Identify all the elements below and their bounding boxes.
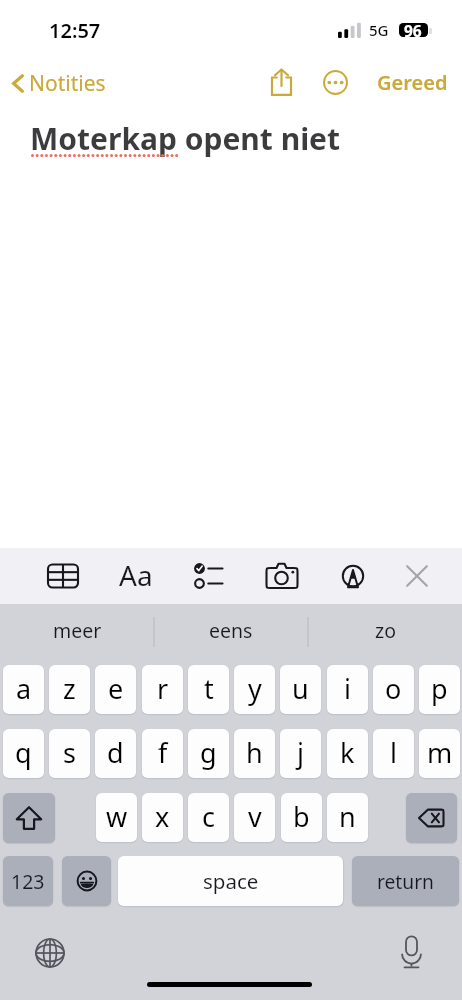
button[interactable]: Checklist [190, 556, 232, 596]
staticText: z [63, 670, 76, 707]
button[interactable]: c [188, 793, 229, 842]
button[interactable]: a [3, 665, 44, 714]
button[interactable]: Meer [316, 60, 354, 105]
button[interactable]: Camera [261, 556, 303, 596]
button[interactable]: q [3, 729, 44, 778]
button[interactable]: b [281, 793, 322, 842]
button[interactable]: k [327, 729, 368, 778]
button[interactable]: z [49, 665, 90, 714]
staticText: q [15, 734, 32, 771]
button[interactable]: t [188, 665, 229, 714]
staticText: zo [375, 617, 396, 644]
staticText: y [248, 670, 262, 707]
button[interactable]: f [142, 729, 183, 778]
staticText: 123 [11, 868, 45, 895]
button[interactable]: n [327, 793, 368, 842]
staticText: w [106, 798, 128, 835]
button[interactable]: y [234, 665, 275, 714]
button[interactable]: h [234, 729, 275, 778]
staticText: h [246, 734, 263, 771]
button[interactable]: Aa [114, 554, 158, 598]
button[interactable]: s [49, 729, 90, 778]
button[interactable]: Markeringen [332, 556, 374, 596]
button[interactable]: u [280, 665, 321, 714]
staticText: v [248, 798, 262, 835]
button[interactable]: d [95, 729, 136, 778]
button[interactable]: Shift [3, 793, 55, 843]
staticText: n [339, 798, 356, 835]
button[interactable]: p [419, 665, 460, 714]
staticText: e [108, 670, 124, 707]
button[interactable]: i [327, 665, 368, 714]
button[interactable]: Notities [12, 61, 106, 106]
button[interactable]: Delen [262, 59, 300, 104]
staticText: b [293, 798, 310, 835]
staticText: o [385, 670, 402, 707]
staticText: Aa [119, 556, 153, 594]
button[interactable]: o [373, 665, 414, 714]
staticText: 12:57 [49, 17, 101, 44]
staticText: 5G [369, 20, 389, 40]
button[interactable]: m [419, 729, 460, 778]
button[interactable]: Emoji [62, 856, 111, 906]
button[interactable]: meer [0, 604, 154, 656]
staticText: i [344, 670, 351, 707]
button[interactable]: g [188, 729, 229, 778]
button[interactable]: Gereed [377, 61, 448, 106]
button[interactable]: Wissen [406, 793, 457, 843]
button[interactable]: v [234, 793, 275, 842]
button[interactable]: r [142, 665, 183, 714]
staticText: c [202, 798, 215, 835]
staticText: d [107, 734, 124, 771]
staticText: Notities [29, 69, 106, 98]
staticText: x [155, 798, 170, 835]
staticText: space [203, 867, 259, 895]
button[interactable]: w [96, 793, 137, 842]
staticText: t [204, 670, 214, 707]
staticText: g [200, 734, 217, 771]
staticText: s [63, 734, 76, 771]
button[interactable]: Dicteren [395, 934, 427, 970]
staticText: k [340, 734, 355, 771]
staticText: eens [209, 617, 253, 644]
staticText: r [157, 670, 169, 707]
staticText: j [297, 734, 304, 771]
button[interactable]: Tabel [42, 556, 84, 596]
button[interactable]: zo [308, 604, 462, 656]
button[interactable]: l [373, 729, 414, 778]
staticText: m [427, 734, 453, 771]
staticText: return [377, 868, 434, 894]
staticText: l [390, 734, 397, 771]
staticText: p [431, 670, 448, 707]
button[interactable]: Sluiten [396, 556, 438, 596]
button[interactable]: Taal wijzigen [33, 936, 66, 969]
button[interactable]: eens [154, 604, 308, 656]
staticText: Moterkap opent niet [30, 118, 341, 159]
button[interactable]: x [142, 793, 183, 842]
button[interactable]: 123 [3, 856, 53, 906]
button[interactable]: j [280, 729, 321, 778]
button[interactable]: return [352, 856, 459, 906]
button[interactable]: space [118, 856, 343, 906]
staticText: 96 [404, 20, 422, 41]
staticText: meer [53, 617, 102, 644]
staticText: u [292, 670, 309, 707]
staticText: Gereed [377, 69, 448, 96]
staticText: a [16, 670, 32, 707]
button[interactable]: e [95, 665, 136, 714]
staticText: f [158, 734, 168, 771]
